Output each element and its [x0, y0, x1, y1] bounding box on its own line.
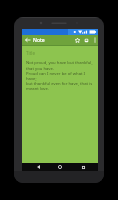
staticText: Title: [26, 50, 35, 56]
staticText: Not proud, you have but thankful, that y…: [26, 60, 94, 91]
button[interactable]: Title: [26, 50, 94, 163]
button[interactable]: Recent apps: [76, 163, 90, 171]
button[interactable]: Change color: [82, 35, 91, 45]
button[interactable]: Favorite: [73, 35, 82, 45]
button[interactable]: Home: [53, 163, 67, 171]
button[interactable]: Back: [22, 35, 33, 45]
staticText: Note: [33, 37, 45, 44]
button[interactable]: Back: [31, 163, 45, 171]
button[interactable]: More options: [91, 35, 98, 45]
